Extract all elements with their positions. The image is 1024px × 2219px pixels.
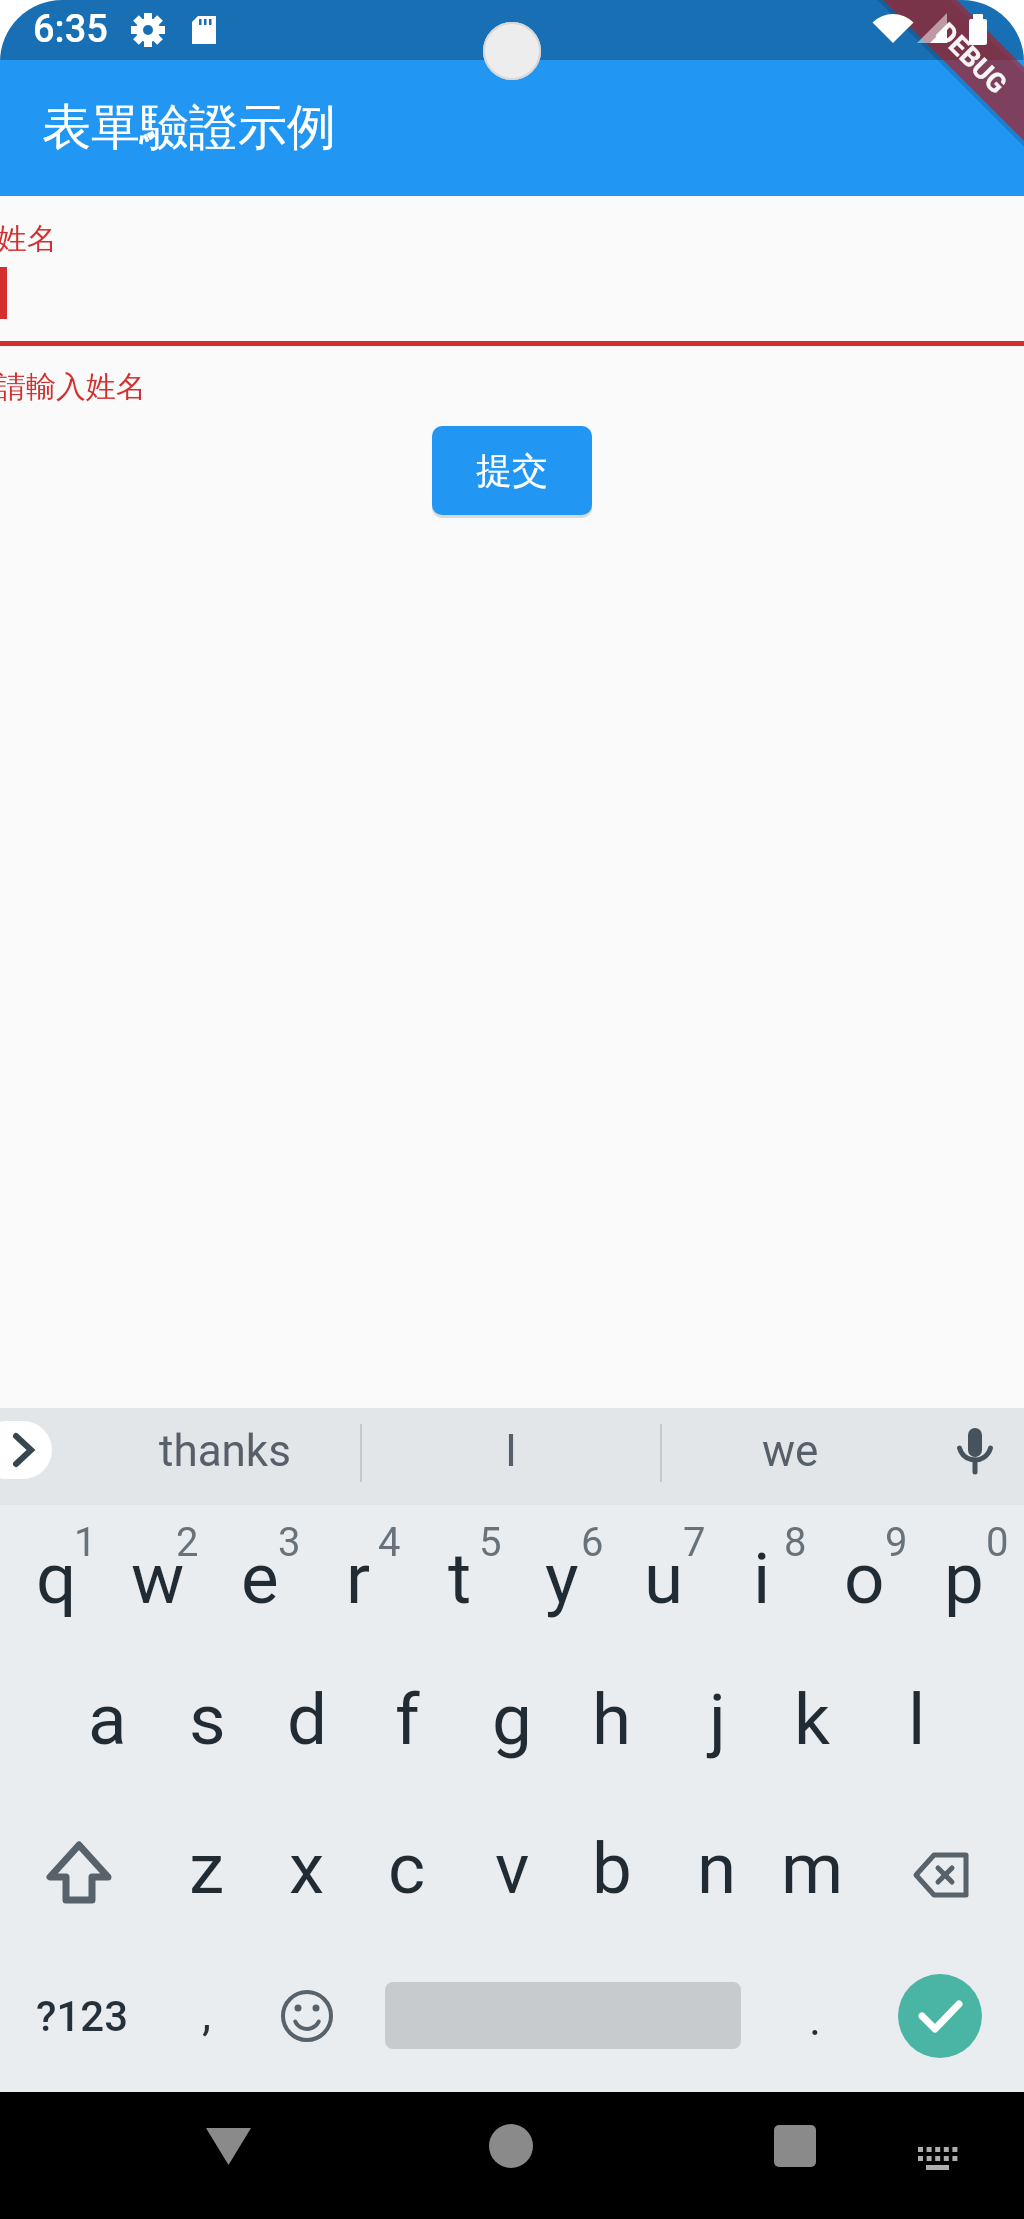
button[interactable]: . (735, 1939, 895, 2099)
button[interactable]: m (732, 1788, 892, 1948)
staticText: 8 (784, 1519, 807, 1566)
button[interactable]: v (432, 1788, 592, 1948)
staticText: v (495, 1827, 530, 1910)
button[interactable]: y (482, 1498, 642, 1658)
button[interactable]: thanks (145, 1371, 305, 1531)
button[interactable]: s (127, 1639, 287, 1799)
staticText: 6 (581, 1519, 604, 1566)
staticText: 3 (278, 1519, 301, 1566)
staticText: s (189, 1678, 226, 1761)
staticText: o (844, 1537, 885, 1620)
staticText: q (36, 1537, 77, 1620)
button[interactable]: x (227, 1788, 387, 1948)
staticText: l (908, 1678, 926, 1761)
staticText: 姓名 (0, 220, 57, 258)
staticText: d (287, 1678, 328, 1761)
button[interactable] (183, 2101, 273, 2191)
button[interactable]: 提交 (432, 426, 592, 515)
staticText: n (697, 1827, 737, 1910)
button[interactable]: l (837, 1639, 997, 1799)
staticText: y (545, 1537, 579, 1620)
staticText: c (388, 1827, 426, 1910)
staticText: thanks (159, 1425, 291, 1477)
staticText: r (346, 1537, 371, 1620)
staticText: g (492, 1678, 532, 1761)
staticText: 5 (479, 1519, 502, 1566)
staticText: 表單驗證示例 (42, 97, 336, 159)
staticText: k (794, 1678, 830, 1761)
button[interactable]: t (380, 1498, 540, 1658)
button[interactable]: p (884, 1498, 1024, 1658)
button[interactable]: , (127, 1934, 287, 2094)
staticText: h (592, 1678, 632, 1761)
staticText: 提交 (476, 448, 548, 493)
button[interactable]: o (784, 1498, 944, 1658)
staticText: , (202, 1987, 212, 2041)
button[interactable] (0, 1421, 52, 1479)
staticText: e (241, 1537, 279, 1620)
staticText: 0 (986, 1519, 1009, 1566)
staticText: . (809, 1992, 822, 2046)
staticText: 9 (885, 1519, 908, 1566)
staticText: x (289, 1827, 325, 1910)
staticText: 1 (74, 1519, 97, 1566)
staticText: j (709, 1678, 726, 1761)
staticText: w (131, 1537, 185, 1620)
button[interactable]: i (682, 1498, 842, 1658)
button[interactable]: b (532, 1788, 692, 1948)
button[interactable]: f (327, 1639, 487, 1799)
button[interactable]: d (227, 1639, 387, 1799)
button[interactable]: u (584, 1498, 744, 1658)
button[interactable]: e (180, 1498, 340, 1658)
staticText: we (762, 1425, 819, 1477)
staticText: p (944, 1537, 984, 1620)
staticText: f (395, 1678, 420, 1761)
staticText: i (753, 1537, 771, 1620)
staticText: 2 (176, 1519, 199, 1566)
button[interactable]: g (432, 1639, 592, 1799)
staticText: 4 (378, 1519, 401, 1566)
staticText: I (505, 1425, 517, 1477)
staticText: z (189, 1827, 225, 1910)
button[interactable]: we (710, 1371, 870, 1531)
button[interactable]: n (637, 1788, 797, 1948)
staticText: u (644, 1537, 684, 1620)
button[interactable] (750, 2101, 840, 2191)
staticText: DEBUG (930, 17, 1014, 101)
staticText: t (448, 1537, 472, 1620)
staticText: m (781, 1827, 844, 1910)
button[interactable]: c (327, 1788, 487, 1948)
button[interactable]: k (732, 1639, 892, 1799)
button[interactable]: z (127, 1788, 287, 1948)
button[interactable]: ?123 (2, 1936, 162, 2096)
button[interactable]: q (0, 1498, 136, 1658)
button[interactable]: r (278, 1498, 438, 1658)
staticText: 6:35 (33, 7, 108, 52)
staticText: ?123 (36, 1992, 129, 2041)
staticText: 7 (683, 1519, 706, 1566)
button[interactable]: j (637, 1639, 797, 1799)
button[interactable]: w (78, 1498, 238, 1658)
button[interactable] (466, 2101, 556, 2191)
button[interactable]: h (532, 1639, 692, 1799)
staticText: 請輸入姓名 (0, 368, 146, 406)
staticText: b (592, 1827, 632, 1910)
button[interactable]: a (27, 1639, 187, 1799)
button[interactable]: I (431, 1371, 591, 1531)
staticText: a (88, 1678, 127, 1761)
button[interactable] (898, 1974, 982, 2058)
